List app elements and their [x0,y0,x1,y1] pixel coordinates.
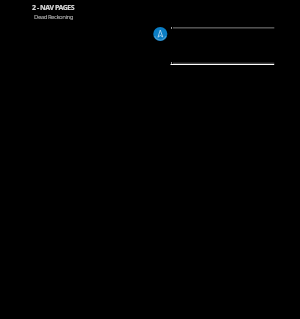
staticText: Dead Reckoning [34,13,73,21]
button[interactable]: Navigation [152,25,169,42]
staticText: 2 - NAV PAGES [32,3,75,13]
